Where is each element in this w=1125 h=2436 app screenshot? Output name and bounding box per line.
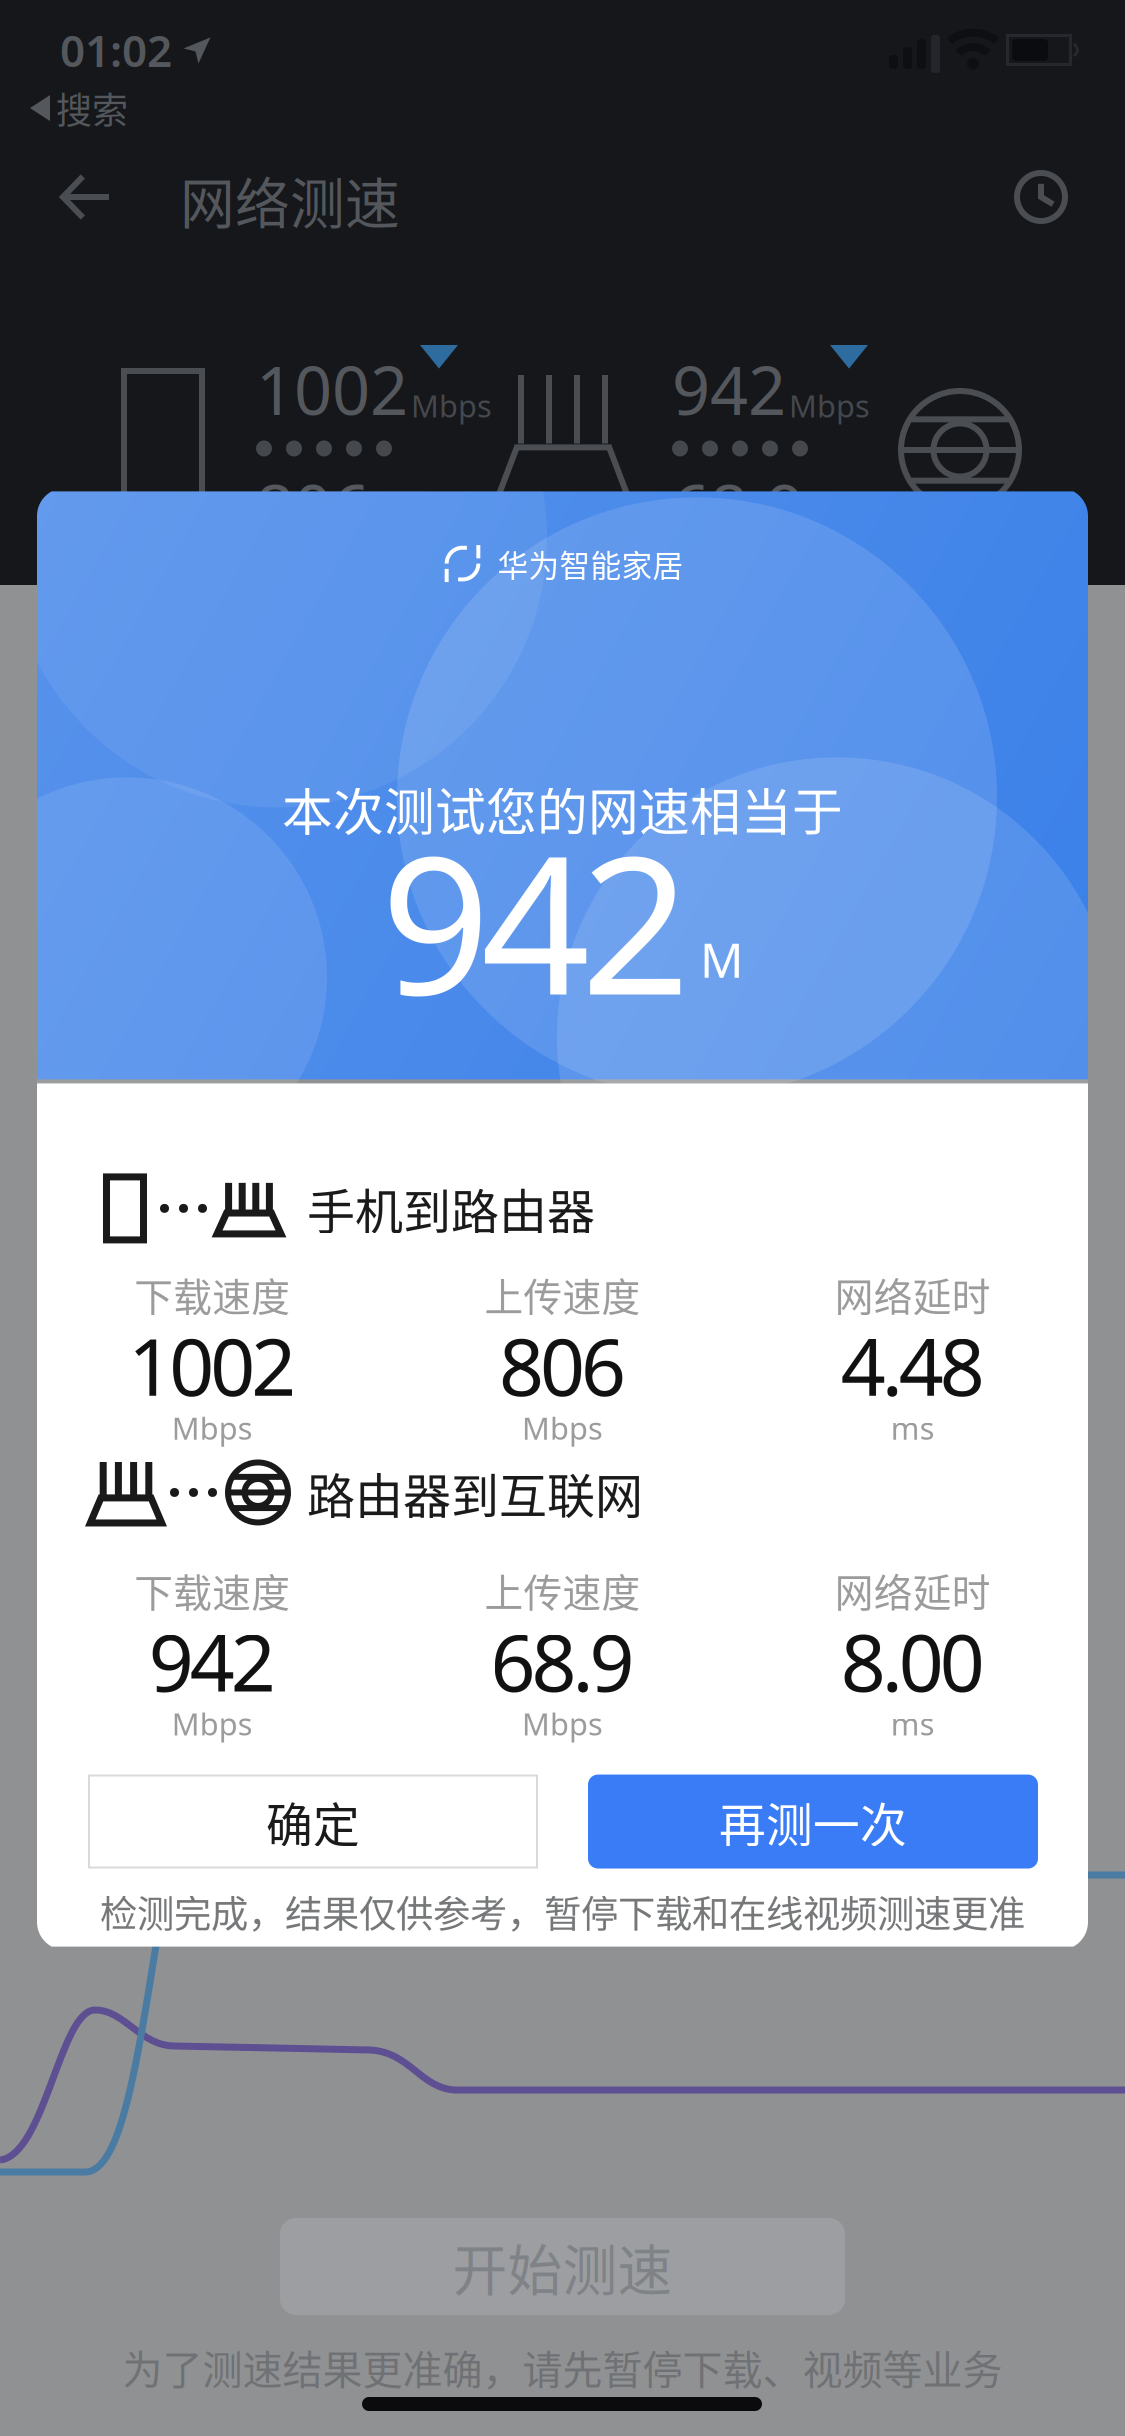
staticText: 下载速度: [134, 1562, 290, 1618]
staticText: 上传速度: [484, 1562, 640, 1618]
staticText: 搜索: [56, 82, 128, 134]
staticText: 再测一次: [719, 1788, 907, 1855]
staticText: Mbps: [789, 385, 870, 426]
staticText: 网络延时: [835, 1266, 991, 1322]
staticText: Mbps: [411, 385, 492, 426]
staticText: Mbps: [807, 503, 888, 545]
staticText: Mbps: [522, 1703, 603, 1745]
staticText: ms: [891, 1703, 935, 1745]
button[interactable]: 再测一次: [588, 1775, 1038, 1869]
staticText: 检测完成，结果仅供参考，暂停下载和在线视频测速更准: [100, 1885, 1025, 1939]
staticText: 开始测速: [452, 2227, 672, 2306]
staticText: 为了测速结果更准确，请先暂停下载、视频等业务: [122, 2338, 1002, 2396]
staticText: 01:02: [60, 20, 172, 80]
staticText: 下载速度: [134, 1266, 290, 1322]
staticText: 8.00: [841, 1619, 985, 1703]
staticText: 68.9: [672, 470, 804, 545]
staticText: 确定: [266, 1788, 360, 1855]
staticText: 68.9: [490, 1619, 634, 1703]
staticText: Mbps: [522, 1407, 603, 1449]
staticText: Mbps: [172, 1703, 253, 1745]
staticText: 806: [256, 470, 370, 545]
staticText: 942: [149, 1619, 276, 1703]
staticText: 806: [499, 1323, 626, 1407]
staticText: 本次测试您的网速相当于: [282, 772, 843, 845]
staticText: 路由器到互联网: [307, 1458, 643, 1527]
staticText: 1002: [256, 352, 408, 426]
staticText: ms: [891, 1407, 935, 1449]
button[interactable]: 搜索: [30, 82, 128, 134]
staticText: 上传速度: [484, 1266, 640, 1322]
staticText: 1002: [128, 1323, 296, 1407]
button[interactable]: [1014, 170, 1068, 224]
staticText: 942: [672, 352, 786, 426]
staticText: 网络测速: [180, 160, 400, 239]
staticText: 手机到路由器: [307, 1174, 595, 1243]
button[interactable]: [58, 170, 112, 224]
staticText: 网络延时: [835, 1562, 991, 1618]
button[interactable]: 开始测速: [280, 2218, 845, 2315]
staticText: M: [700, 926, 744, 992]
button[interactable]: 确定: [88, 1775, 538, 1869]
staticText: 华为智能家居: [497, 541, 683, 586]
staticText: 4.48: [841, 1323, 985, 1407]
staticText: Mbps: [172, 1407, 253, 1449]
staticText: 942: [381, 823, 690, 1018]
